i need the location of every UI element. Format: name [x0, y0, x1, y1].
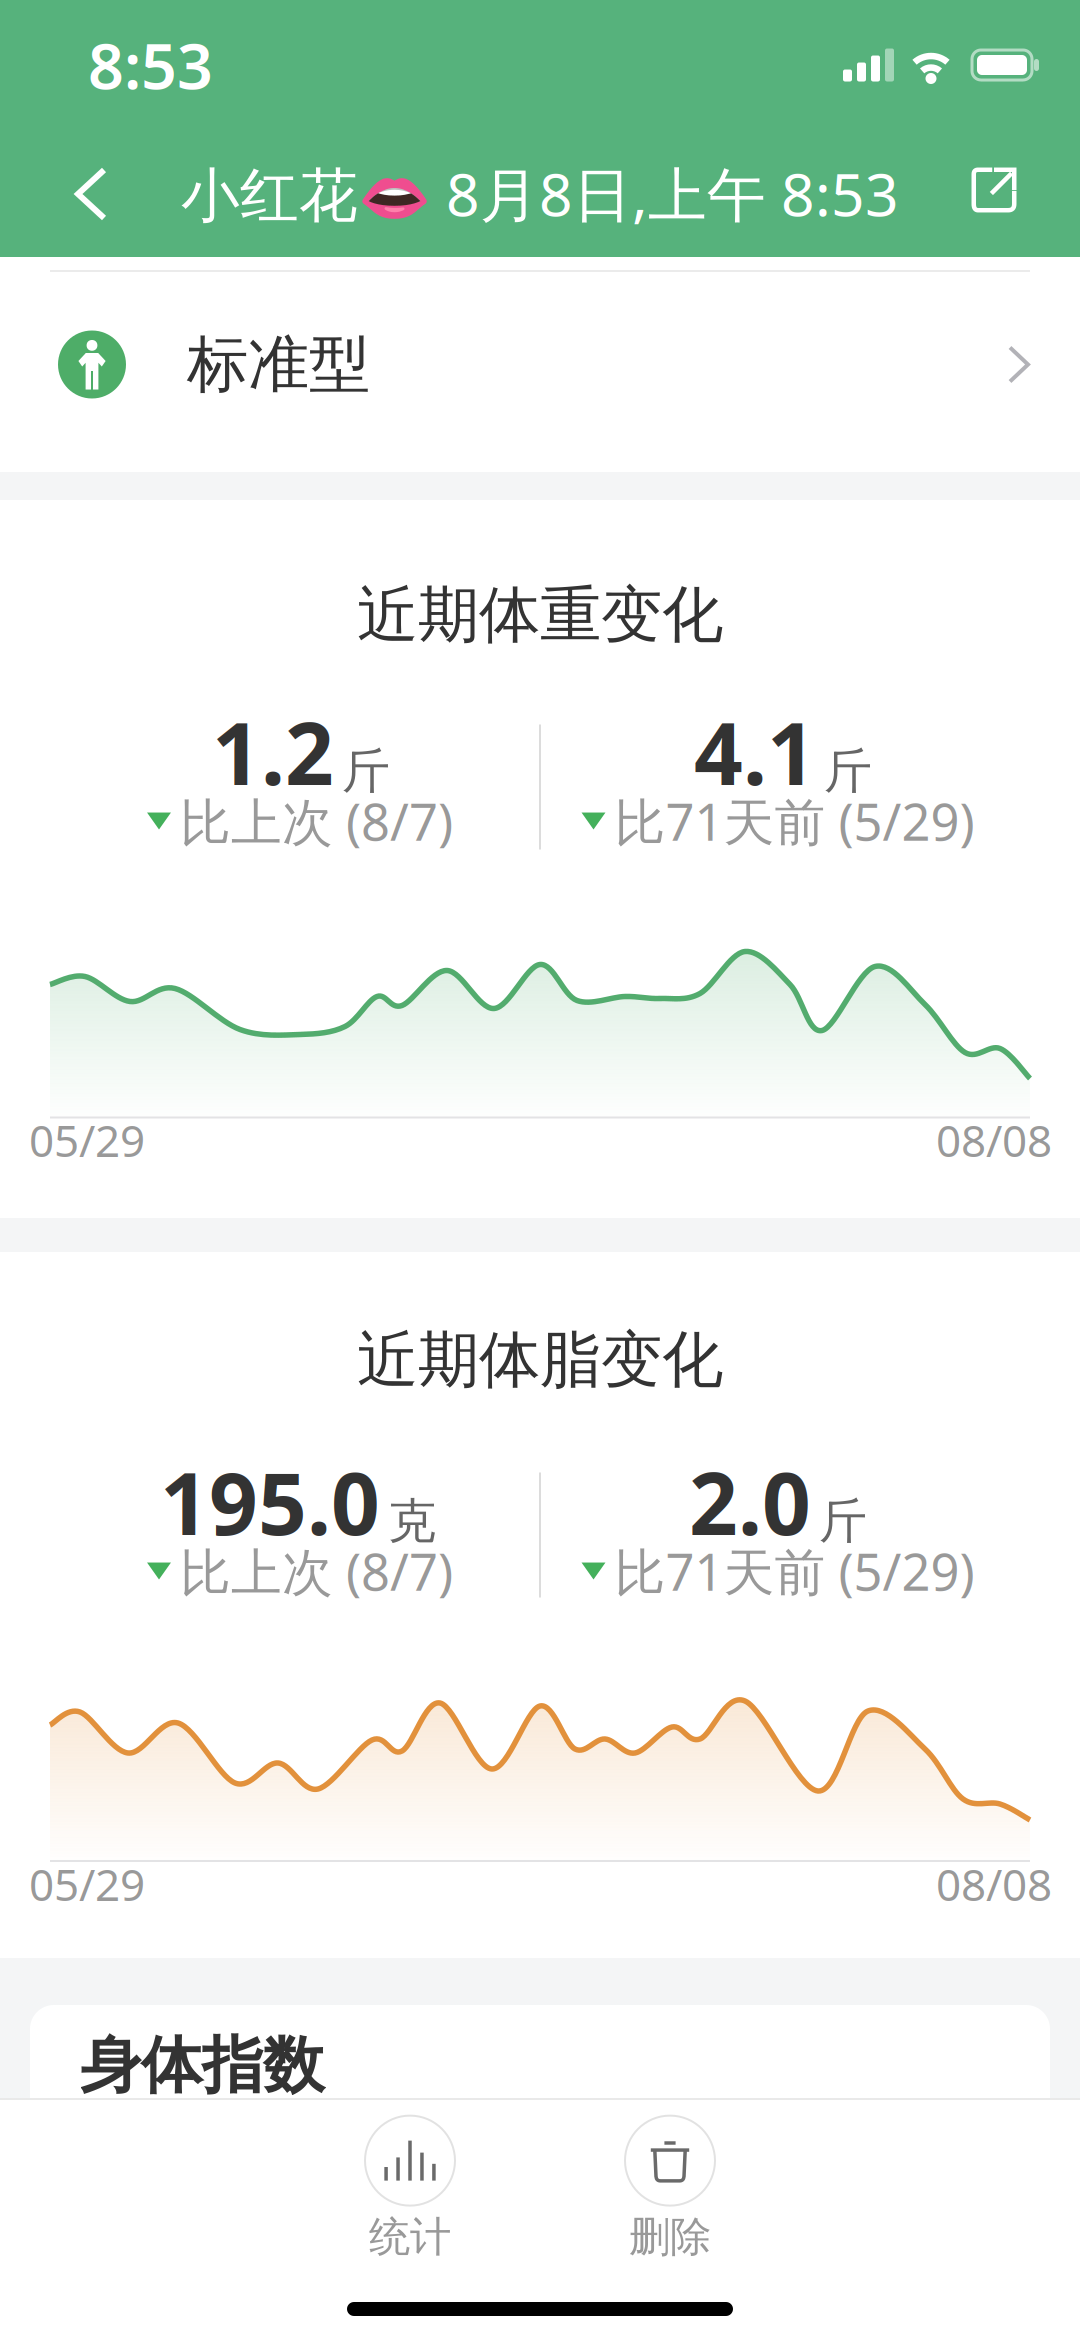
staticText: 删除: [629, 2212, 711, 2262]
button[interactable]: 统计: [365, 2116, 455, 2262]
staticText: 05/29: [29, 1855, 145, 1913]
button[interactable]: Back: [0, 130, 104, 218]
button[interactable]: 标准型: [0, 257, 1080, 472]
staticText: 比71天前 (5/29): [614, 787, 974, 855]
staticText: 斤: [824, 742, 872, 801]
button[interactable]: Share: [972, 130, 1080, 212]
staticText: 比71天前 (5/29): [614, 1537, 974, 1605]
staticText: 比上次 (8/7): [180, 1537, 453, 1605]
button[interactable]: 删除: [625, 2116, 715, 2262]
staticText: 近期体脂变化: [357, 1322, 723, 1398]
staticText: 4.1: [694, 695, 816, 809]
staticText: 标准型: [187, 327, 370, 402]
staticText: 2.0: [689, 1445, 811, 1559]
staticText: 身体指数: [80, 2028, 324, 2103]
staticText: 08/08: [936, 1111, 1052, 1169]
staticText: 比上次 (8/7): [180, 787, 453, 855]
staticText: 小红花👄 8月8日,上午 8:53: [181, 154, 899, 232]
staticText: 近期体重变化: [357, 577, 723, 653]
staticText: 195.0: [160, 1445, 380, 1559]
staticText: 1.2: [212, 695, 334, 809]
staticText: 斤: [342, 742, 390, 801]
staticText: 克: [388, 1492, 436, 1551]
staticText: 8:53: [88, 23, 213, 107]
staticText: 统计: [369, 2212, 451, 2262]
staticText: 05/29: [29, 1111, 145, 1169]
staticText: 斤: [819, 1492, 867, 1551]
staticText: 08/08: [936, 1855, 1052, 1913]
